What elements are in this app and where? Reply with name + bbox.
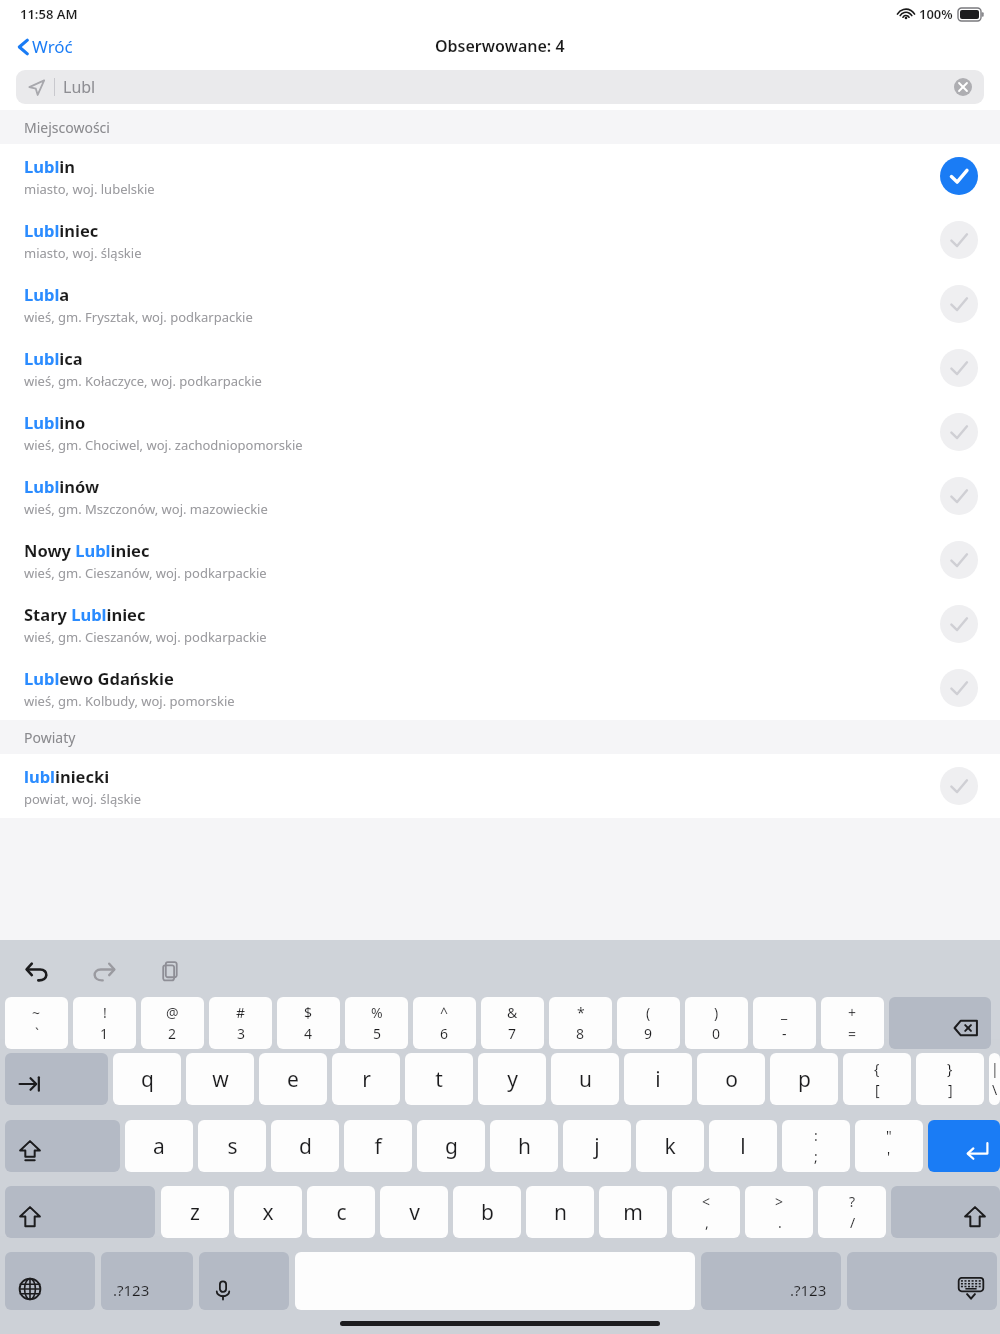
button[interactable]: Select [940,605,978,643]
button[interactable]: o [697,1053,765,1105]
staticText: Powiaty [24,728,76,747]
button[interactable]: .?123 [101,1252,193,1310]
button[interactable]: Return [928,1120,1000,1172]
button[interactable]: r [332,1053,400,1105]
button[interactable]: a [125,1120,193,1172]
button[interactable]: ! [73,997,136,1049]
staticText: } [947,1059,953,1078]
button[interactable]: i [624,1053,692,1105]
button[interactable]: $ [277,997,340,1049]
staticText: wieś, gm. Kolbudy, woj. pomorskie [24,692,235,710]
staticText: wieś, gm. Cieszanów, woj. podkarpackie [24,564,267,582]
button[interactable]: v [380,1186,448,1238]
button[interactable]: Select [940,413,978,451]
button[interactable]: b [453,1186,521,1238]
button[interactable]: Shift right [891,1186,1000,1238]
button[interactable]: x [234,1186,302,1238]
button[interactable]: k [636,1120,704,1172]
button[interactable]: Select [940,349,978,387]
button[interactable]: Lubliniec [0,208,1000,272]
button[interactable]: % [345,997,408,1049]
staticText: y [507,1065,518,1094]
button[interactable]: < [672,1186,740,1238]
button[interactable]: lubliniecki [0,754,1000,818]
button[interactable]: Select [940,221,978,259]
button[interactable]: ~ [5,997,68,1049]
button[interactable]: _ [753,997,816,1049]
button[interactable]: Switch keyboard [5,1252,95,1310]
button[interactable]: n [526,1186,594,1238]
button[interactable]: Lubla [0,272,1000,336]
button[interactable]: p [770,1053,838,1105]
button[interactable]: Select [940,669,978,707]
button[interactable]: & [481,997,544,1049]
button[interactable]: Lublin [0,144,1000,208]
staticText: Obserwowane: 4 [435,35,565,57]
button[interactable]: Lubl [16,70,984,104]
staticText: { [874,1059,880,1078]
button[interactable]: Stary Lubliniec [0,592,1000,656]
button[interactable]: Lublinów [0,464,1000,528]
button[interactable]: Lublica [0,336,1000,400]
button[interactable]: y [478,1053,546,1105]
staticText: 5 [373,1024,382,1043]
button[interactable]: .?123 [701,1252,841,1310]
button[interactable]: w [186,1053,254,1105]
button[interactable]: ^ [413,997,476,1049]
button[interactable]: " [855,1120,923,1172]
button[interactable]: c [307,1186,375,1238]
staticText: ) [714,1003,719,1022]
button[interactable]: @ [141,997,204,1049]
button[interactable]: f [344,1120,412,1172]
button[interactable]: Lublino [0,400,1000,464]
staticText: Lubla [24,283,70,305]
button[interactable]: # [209,997,272,1049]
button[interactable]: Paste [156,956,186,986]
button[interactable]: + [821,997,884,1049]
button[interactable]: g [417,1120,485,1172]
button[interactable]: s [198,1120,266,1172]
staticText: ? [849,1192,856,1211]
button[interactable]: | [989,1053,1000,1105]
button[interactable]: Wróć [14,31,77,62]
button[interactable]: Redo [89,956,119,986]
button[interactable]: Dictation [199,1252,289,1310]
button[interactable]: > [745,1186,813,1238]
button[interactable]: t [405,1053,473,1105]
staticText: Lubliniec [24,219,99,241]
button[interactable]: * [549,997,612,1049]
button[interactable]: Tab [5,1053,108,1105]
button[interactable]: } [916,1053,984,1105]
button[interactable]: h [490,1120,558,1172]
button[interactable]: : [782,1120,850,1172]
button[interactable]: q [113,1053,181,1105]
button[interactable]: Lublewo Gdańskie [0,656,1000,720]
staticText: Lubl [63,76,96,98]
button[interactable]: ? [818,1186,886,1238]
button[interactable]: j [563,1120,631,1172]
button[interactable]: Clear search [954,78,972,96]
button[interactable]: u [551,1053,619,1105]
button[interactable]: Hide keyboard [847,1252,997,1310]
button[interactable]: Select [940,767,978,805]
button[interactable]: Shift [5,1186,155,1238]
button[interactable]: m [599,1186,667,1238]
staticText: miasto, woj. śląskie [24,244,142,262]
button[interactable]: { [843,1053,911,1105]
button[interactable]: z [161,1186,229,1238]
button[interactable]: ( [617,997,680,1049]
button[interactable]: Selected [940,157,978,195]
button[interactable]: e [259,1053,327,1105]
staticText: a [153,1132,165,1161]
button[interactable]: Backspace [889,997,991,1049]
button[interactable]: Select [940,477,978,515]
button[interactable]: l [709,1120,777,1172]
button[interactable]: ) [685,997,748,1049]
button[interactable]: Nowy Lubliniec [0,528,1000,592]
button[interactable]: Select [940,285,978,323]
button[interactable]: Select [940,541,978,579]
button[interactable]: d [271,1120,339,1172]
button[interactable]: Undo [22,956,52,986]
button[interactable]: Caps lock [5,1120,120,1172]
